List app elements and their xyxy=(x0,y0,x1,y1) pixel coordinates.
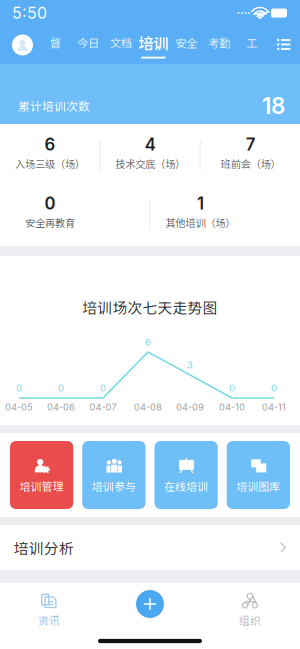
staticText: 培训管理 xyxy=(19,478,63,494)
staticText: 技术交底（场） xyxy=(115,156,185,171)
staticText: 7 xyxy=(246,134,256,155)
button[interactable]: 在线培训 xyxy=(154,441,218,509)
staticText: 培训参与 xyxy=(92,478,136,494)
button[interactable]: 培训管理 xyxy=(10,441,73,509)
staticText: 组织 xyxy=(239,612,261,628)
staticText: 培训分析 xyxy=(14,537,74,558)
staticText: 工 xyxy=(246,34,257,51)
staticText: 班前会（场） xyxy=(221,156,281,171)
staticText: 培训场次七天走势图 xyxy=(82,296,217,318)
button[interactable]: 新建 xyxy=(132,586,168,622)
staticText: 在线培训 xyxy=(164,478,208,494)
staticText: 18 xyxy=(262,92,285,119)
button[interactable]: 工 xyxy=(235,27,268,63)
staticText: 安全 xyxy=(175,34,197,51)
staticText: 督 xyxy=(50,34,61,51)
staticText: 1 xyxy=(197,193,204,214)
button[interactable]: 培训图库 xyxy=(227,441,290,509)
button[interactable]: 督 xyxy=(39,27,72,63)
button[interactable]: 培训参与 xyxy=(82,441,145,509)
staticText: 0 xyxy=(229,382,235,394)
staticText: 0 xyxy=(100,382,106,394)
staticText: 04-09 xyxy=(176,401,204,413)
staticText: 4 xyxy=(145,134,156,155)
staticText: 安全再教育 xyxy=(25,215,75,230)
button[interactable]: 组织 xyxy=(223,590,277,630)
staticText: 6 xyxy=(44,134,55,155)
staticText: 资讯 xyxy=(38,612,60,628)
staticText: 今日 xyxy=(77,34,99,51)
staticText: 0 xyxy=(58,382,64,394)
staticText: 5:50 xyxy=(12,3,47,23)
button[interactable]: 考勤 xyxy=(203,27,235,63)
button[interactable]: 今日 xyxy=(72,27,104,63)
staticText: 其他培训（场） xyxy=(165,215,235,230)
staticText: 考勤 xyxy=(208,34,230,51)
staticText: 0 xyxy=(16,382,22,394)
staticText: 04-11 xyxy=(262,401,286,413)
button[interactable]: 培训 xyxy=(137,27,170,63)
staticText: 04-10 xyxy=(219,401,245,413)
staticText: 入场三级（场） xyxy=(15,156,85,171)
staticText: 04-05 xyxy=(5,401,33,413)
staticText: 0 xyxy=(44,193,55,214)
staticText: 6 xyxy=(145,336,151,348)
staticText: 累计培训次数 xyxy=(18,97,90,114)
button[interactable]: 培训分析 xyxy=(0,525,300,570)
staticText: 0 xyxy=(271,382,277,394)
staticText: 04-07 xyxy=(89,401,116,413)
staticText: 培训 xyxy=(138,31,168,54)
button[interactable]: 安全 xyxy=(170,27,203,63)
staticText: 3 xyxy=(187,359,193,371)
button[interactable]: 文档 xyxy=(104,27,137,63)
button[interactable]: 资讯 xyxy=(22,590,76,630)
button[interactable]: 个人中心 xyxy=(0,34,39,55)
staticText: 培训图库 xyxy=(236,478,280,494)
button[interactable]: 更多 xyxy=(268,28,300,62)
staticText: 04-08 xyxy=(134,401,162,413)
staticText: 文档 xyxy=(110,34,132,51)
staticText: 04-06 xyxy=(47,401,75,413)
